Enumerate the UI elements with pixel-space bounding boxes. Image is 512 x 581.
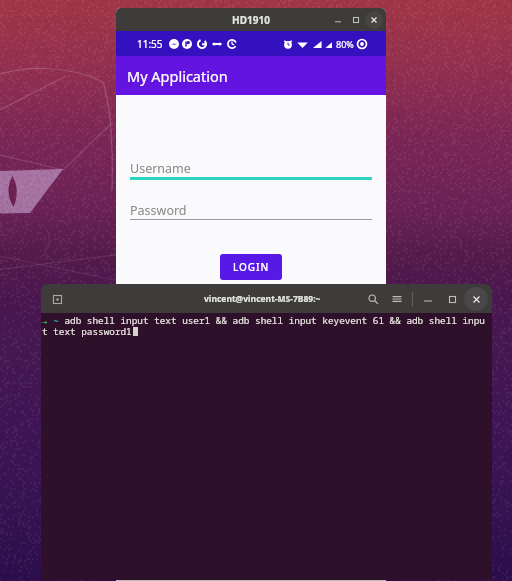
staticText: My Application	[127, 66, 228, 86]
button[interactable]: Maximize	[347, 11, 365, 29]
button[interactable]: Minimize	[416, 287, 440, 311]
button[interactable]: Close	[464, 287, 488, 311]
button[interactable]: LOGIN	[220, 254, 282, 280]
staticText: → ~ adb shell input text user1 && adb sh…	[42, 314, 485, 337]
button[interactable]: Close	[365, 11, 383, 29]
button[interactable]: Maximize	[440, 287, 464, 311]
staticText: LOGIN	[233, 260, 270, 274]
staticText: vincent@vincent-MS-7B89:~	[204, 293, 321, 305]
staticText: Password	[130, 202, 187, 219]
staticText: 11:55	[137, 37, 163, 51]
button[interactable]: Minimize	[329, 11, 347, 29]
staticText: 80%	[336, 38, 354, 50]
button[interactable]: Search	[361, 287, 385, 311]
button[interactable]: New tab	[48, 290, 66, 308]
staticText: Username	[130, 160, 191, 177]
button[interactable]: Menu	[385, 287, 409, 311]
staticText: HD1910	[232, 13, 270, 27]
